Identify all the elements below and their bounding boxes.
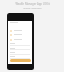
staticText: Wealth Manager App UI Kit bbox=[15, 2, 50, 6]
staticText: Mobile Application bbox=[23, 7, 42, 10]
button[interactable] bbox=[10, 59, 31, 62]
